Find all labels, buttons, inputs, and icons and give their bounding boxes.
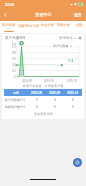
staticText: 0 bbox=[72, 105, 74, 109]
staticText: 2025-09 bbox=[44, 79, 54, 83]
staticText: 2025-08 bbox=[31, 91, 43, 95]
staticText: 服务 bbox=[74, 12, 82, 17]
button[interactable]: 报时分析 bbox=[56, 21, 72, 33]
staticText: 0 bbox=[14, 75, 16, 79]
staticText: 0.2 bbox=[12, 69, 16, 73]
staticText: 日期 bbox=[13, 91, 19, 95]
staticText: 2025-10 bbox=[67, 79, 77, 83]
staticText: 业绩 bbox=[76, 23, 83, 27]
button[interactable]: 在线客服 bbox=[73, 158, 82, 167]
staticText: 0 bbox=[36, 105, 38, 109]
button[interactable]: 客户试算量 bbox=[51, 43, 74, 49]
staticText: 0 bbox=[72, 98, 74, 102]
button[interactable]: 客户试算 bbox=[0, 21, 17, 33]
button[interactable]: 查看更多详情 bbox=[32, 111, 55, 117]
staticText: 机会分析 bbox=[41, 23, 55, 27]
staticText: 客户试算 bbox=[2, 23, 16, 27]
staticText: 0 bbox=[36, 98, 38, 102]
staticText: 有效客户数 bbox=[48, 84, 64, 88]
staticText: 1.0 bbox=[12, 45, 16, 49]
staticText: 0.4 bbox=[12, 63, 16, 67]
staticText: 0.18 bbox=[68, 59, 74, 63]
staticText: 0.6 bbox=[12, 57, 16, 61]
staticText: 报时分析 bbox=[57, 23, 71, 27]
staticText: 2025-08 bbox=[22, 79, 32, 83]
staticText: 0 bbox=[54, 98, 56, 102]
button[interactable]: 查询条件 bbox=[59, 36, 76, 40]
staticText: 客户试算量 bbox=[26, 84, 42, 88]
staticText: 2025-09 bbox=[49, 91, 61, 95]
button[interactable]: 服务 bbox=[73, 12, 83, 17]
staticText: (个) bbox=[12, 42, 17, 46]
staticText: 查看更多详情 bbox=[34, 112, 53, 116]
staticText: 有效客户数(个) bbox=[5, 105, 25, 109]
button[interactable]: 更多选项 bbox=[78, 36, 82, 40]
button[interactable]: 储蓄/托出分析 bbox=[17, 21, 40, 33]
staticText: 2025-10 bbox=[67, 91, 79, 95]
staticText: 22:36 bbox=[5, 2, 15, 7]
button[interactable]: 机会分析 bbox=[40, 21, 56, 33]
button[interactable]: 业绩 bbox=[72, 21, 86, 33]
staticText: 客户试算量(个) bbox=[5, 98, 25, 102]
staticText: 营销中心 bbox=[35, 12, 52, 17]
staticText: 0.8 bbox=[12, 51, 16, 55]
staticText: 0 bbox=[54, 105, 56, 109]
button[interactable]: 返回 bbox=[0, 9, 11, 20]
staticText: 储蓄/托出分析 bbox=[18, 23, 40, 28]
staticText: 查询条件 bbox=[59, 36, 73, 40]
staticText: 客户总量(时) bbox=[5, 35, 26, 40]
staticText: 客户试算量 bbox=[53, 44, 69, 48]
